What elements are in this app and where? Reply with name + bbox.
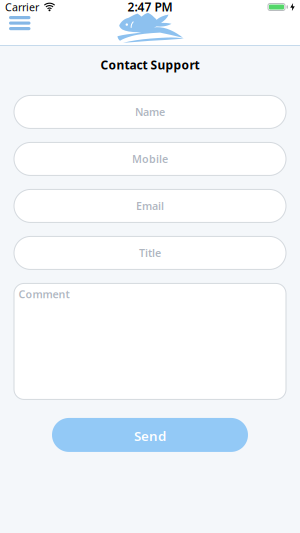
button[interactable]: Title: [13, 236, 286, 270]
button[interactable]: Mobile: [13, 142, 286, 176]
button[interactable]: Name: [13, 95, 286, 129]
staticText: Carrier: [5, 0, 39, 14]
staticText: Title: [139, 246, 161, 260]
staticText: Email: [136, 199, 164, 213]
staticText: 2:47 PM: [127, 0, 172, 15]
button[interactable]: Send: [52, 418, 248, 452]
button[interactable]: Menu: [0, 0, 30, 30]
staticText: Comment: [18, 287, 69, 301]
staticText: Contact Support: [100, 57, 199, 73]
staticText: Name: [135, 105, 165, 119]
button[interactable]: Email: [13, 189, 286, 223]
staticText: Mobile: [132, 152, 168, 166]
button[interactable]: Comment: [13, 283, 286, 400]
staticText: Send: [134, 427, 166, 445]
